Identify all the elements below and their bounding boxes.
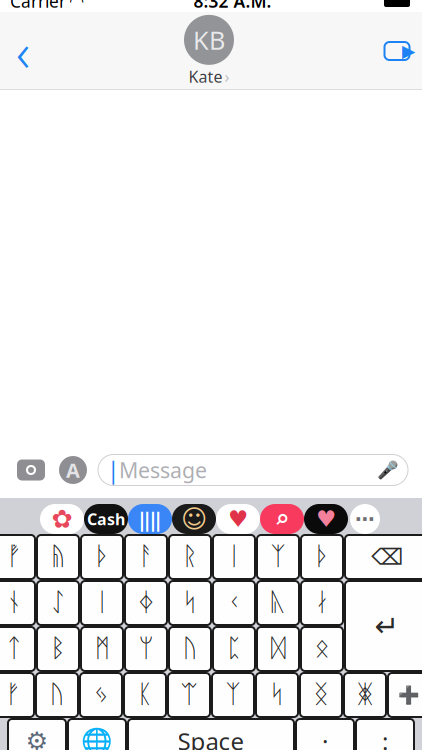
button[interactable]: App Store bbox=[58, 455, 88, 485]
button[interactable]: ᛏ bbox=[0, 627, 35, 671]
staticText: ‹ bbox=[16, 16, 30, 86]
button[interactable]: Apple Cash bbox=[84, 504, 128, 534]
staticText: ᛁ bbox=[226, 545, 241, 569]
button[interactable]: ᚾ bbox=[0, 581, 35, 625]
staticText: ♥ bbox=[228, 506, 248, 532]
button[interactable]: ᛁ bbox=[213, 535, 255, 579]
button[interactable]: Delete bbox=[345, 535, 422, 579]
button[interactable]: ᛋ bbox=[169, 581, 211, 625]
button[interactable]: ᛗ bbox=[81, 627, 123, 671]
button[interactable]: ᛞ bbox=[257, 627, 299, 671]
button[interactable]: Camera bbox=[14, 455, 48, 485]
staticText: ᛈ bbox=[226, 637, 241, 661]
button[interactable]: Settings bbox=[8, 719, 66, 750]
staticText: ᛉ bbox=[225, 683, 240, 707]
button[interactable]: ᛅ bbox=[301, 581, 343, 625]
staticText: ⋯ bbox=[355, 508, 375, 530]
button[interactable]: ᚡ bbox=[0, 535, 35, 579]
button[interactable]: ᛋ bbox=[256, 673, 298, 717]
button[interactable]: ᛤ bbox=[344, 673, 386, 717]
button[interactable]: ᚣ bbox=[257, 581, 299, 625]
button[interactable]: ᛃ bbox=[80, 673, 122, 717]
button[interactable]: ᚱ bbox=[169, 535, 211, 579]
staticText: : bbox=[382, 725, 388, 750]
button[interactable]: ᛉ bbox=[212, 673, 254, 717]
staticText: ᚡ bbox=[6, 545, 21, 569]
button[interactable]: ᛟ bbox=[301, 627, 343, 671]
staticText: A bbox=[66, 457, 80, 483]
button[interactable]: ᛘ bbox=[125, 627, 167, 671]
button[interactable]: Images bbox=[260, 504, 304, 534]
button[interactable]: Activity bbox=[304, 504, 348, 534]
button[interactable]: ᛒ bbox=[37, 627, 79, 671]
button[interactable]: ᛇ bbox=[37, 581, 79, 625]
staticText: ᛅ bbox=[314, 591, 329, 615]
button[interactable]: KB bbox=[184, 15, 234, 87]
staticText: ✿ bbox=[51, 505, 72, 533]
staticText: ᛏ bbox=[6, 637, 21, 661]
button[interactable]: ᚢ bbox=[169, 627, 211, 671]
button[interactable]: Next keyboard bbox=[68, 719, 126, 750]
button[interactable]: ᛄ bbox=[125, 581, 167, 625]
staticText: Cash bbox=[87, 508, 125, 530]
button[interactable]: FaceTime bbox=[372, 23, 422, 79]
button[interactable]: Back bbox=[0, 23, 46, 79]
staticText: Message bbox=[119, 456, 207, 484]
button[interactable]: ᛝ bbox=[300, 673, 342, 717]
staticText: ᛕ bbox=[137, 683, 152, 707]
staticText: ‖‖ bbox=[139, 506, 161, 532]
button[interactable]: ᚲ bbox=[213, 581, 255, 625]
button[interactable]: | bbox=[98, 454, 408, 485]
button[interactable]: ᛠ bbox=[168, 673, 210, 717]
staticText: ᛉ bbox=[270, 545, 285, 569]
staticText: | bbox=[107, 455, 119, 485]
staticText: ᛤ bbox=[357, 683, 372, 707]
button[interactable]: ᛁ bbox=[81, 581, 123, 625]
staticText: ᚢ bbox=[49, 683, 64, 707]
staticText: ᛇ bbox=[50, 591, 65, 615]
button[interactable]: Period bbox=[296, 719, 354, 750]
button[interactable]: ᚠ bbox=[0, 673, 34, 717]
button[interactable]: ᚢ bbox=[36, 673, 78, 717]
staticText: 🎤 bbox=[377, 460, 399, 480]
staticText: ▶ bbox=[402, 41, 415, 61]
button[interactable]: ᛕ bbox=[124, 673, 166, 717]
button[interactable]: Photos bbox=[40, 504, 84, 534]
button[interactable]: Space bbox=[128, 719, 294, 750]
staticText: Space bbox=[177, 725, 244, 750]
staticText: › bbox=[224, 66, 229, 87]
staticText: ᛋ bbox=[269, 683, 284, 707]
staticText: ᚦ bbox=[94, 545, 109, 569]
staticText: ᛒ bbox=[50, 637, 65, 661]
button[interactable]: Stickers bbox=[216, 504, 260, 534]
staticText: 🌐 bbox=[81, 726, 113, 750]
staticText: ↵ bbox=[374, 609, 399, 643]
staticText: ᚨ bbox=[138, 545, 153, 569]
button[interactable]: ᚦ bbox=[301, 535, 343, 579]
button[interactable]: More apps bbox=[348, 504, 382, 534]
staticText: ᚠ bbox=[5, 683, 20, 707]
button[interactable]: Audio Message bbox=[128, 504, 172, 534]
staticText: ᚢ bbox=[182, 637, 197, 661]
staticText: ♥ bbox=[316, 506, 336, 532]
button[interactable]: ᛈ bbox=[213, 627, 255, 671]
button[interactable]: Colon bbox=[356, 719, 414, 750]
staticText: ᛄ bbox=[138, 591, 153, 615]
button[interactable]: Return bbox=[345, 581, 422, 671]
button[interactable]: ᚨ bbox=[125, 535, 167, 579]
staticText: ⌕ bbox=[274, 505, 289, 533]
staticText: ᛘ bbox=[138, 637, 153, 661]
staticText: · bbox=[322, 725, 328, 750]
staticText: ᛞ bbox=[270, 637, 285, 661]
button[interactable]: ᚥ bbox=[37, 535, 79, 579]
staticText: ◠ bbox=[70, 0, 83, 11]
staticText: ᚾ bbox=[6, 591, 21, 615]
staticText: KB bbox=[193, 23, 225, 57]
button[interactable]: Add bbox=[388, 673, 422, 717]
staticText: Kate bbox=[188, 66, 222, 87]
button[interactable]: Memoji bbox=[172, 504, 216, 534]
staticText: ᚦ bbox=[314, 545, 329, 569]
staticText: ᚱ bbox=[182, 545, 197, 569]
button[interactable]: ᛉ bbox=[257, 535, 299, 579]
button[interactable]: ᚦ bbox=[81, 535, 123, 579]
